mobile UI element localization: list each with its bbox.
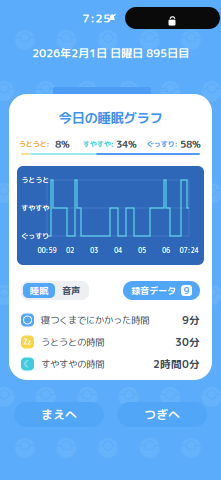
button[interactable]: ☾ xyxy=(17,353,204,375)
button[interactable]: 音声 xyxy=(55,283,87,298)
staticText: 9分 xyxy=(182,313,200,327)
staticText: 2時間0分 xyxy=(153,357,200,371)
staticText: 8% xyxy=(55,137,70,151)
staticText: 03 xyxy=(90,246,98,255)
staticText: 寝つくまでにかかった時間 xyxy=(41,313,149,326)
staticText: すやすや: xyxy=(82,139,113,149)
staticText: ☾ xyxy=(23,359,31,369)
staticText: 録音データ xyxy=(131,284,176,297)
staticText: 06 xyxy=(162,246,170,255)
staticText: 2026年2月1日 日曜日 895日目 xyxy=(32,45,189,61)
staticText: 今日の睡眠グラフ xyxy=(58,109,162,127)
staticText: 07:24 xyxy=(179,246,198,255)
staticText: 34% xyxy=(116,137,137,151)
staticText: 7:25 xyxy=(82,10,111,26)
staticText: つぎへ xyxy=(144,406,180,423)
button[interactable]: まえへ xyxy=(14,402,104,427)
button[interactable]: つぎへ xyxy=(117,402,207,427)
staticText: 30分 xyxy=(175,335,200,349)
staticText: ぐっすり: xyxy=(146,139,177,149)
staticText: 睡眠 xyxy=(30,284,48,297)
staticText: うとうと: xyxy=(18,139,49,149)
staticText: 05 xyxy=(138,246,146,255)
staticText: 00:59 xyxy=(37,246,56,255)
staticText: うとうと xyxy=(21,175,49,185)
staticText: すやすやの時間 xyxy=(41,357,104,370)
button[interactable]: 寝つくまでにかかった時間 xyxy=(17,309,204,331)
staticText: うとうとの時間 xyxy=(41,335,104,348)
button[interactable]: 睡眠 xyxy=(23,283,55,298)
button[interactable]: 録音データ xyxy=(123,281,200,300)
staticText: 04 xyxy=(114,246,122,255)
staticText: Zz xyxy=(23,337,31,347)
staticText: 58% xyxy=(180,137,201,151)
button[interactable]: Zz xyxy=(17,331,204,353)
staticText: すやすや xyxy=(21,203,49,213)
staticText: 9 xyxy=(183,284,189,297)
staticText: 02 xyxy=(66,246,74,255)
staticText: 音声 xyxy=(62,284,80,297)
staticText: ぐっすり xyxy=(21,231,49,241)
staticText: まえへ xyxy=(41,406,77,423)
